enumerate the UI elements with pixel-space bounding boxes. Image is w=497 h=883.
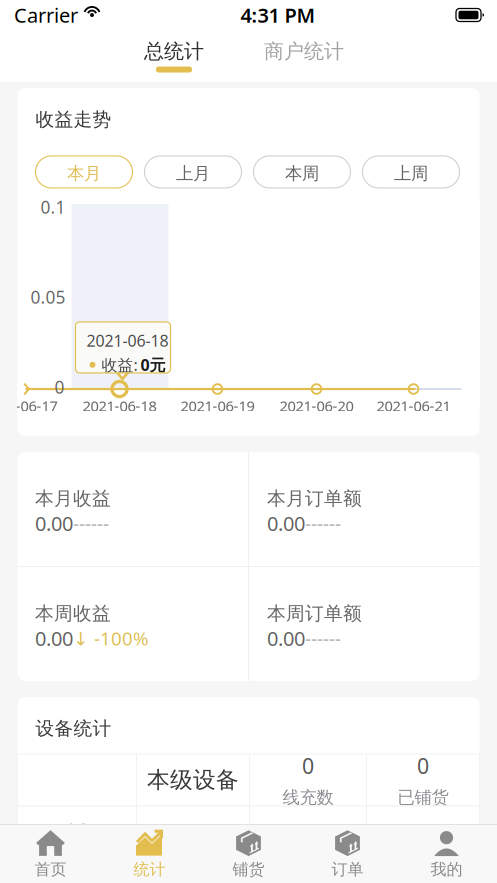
staticText: 0.00 bbox=[267, 625, 305, 651]
staticText: 收益走势 bbox=[35, 108, 111, 131]
staticText: 收益: bbox=[101, 354, 137, 375]
staticText: 0 bbox=[54, 375, 64, 398]
button[interactable]: 本周 bbox=[253, 156, 350, 188]
staticText: 2021-06-17 bbox=[0, 396, 57, 416]
staticText: 线充数 bbox=[282, 787, 333, 808]
staticText: 10 bbox=[64, 817, 90, 847]
staticText: 本月收益 bbox=[35, 487, 111, 510]
button[interactable]: 我的 bbox=[397, 825, 496, 883]
button[interactable]: 商户统计 bbox=[239, 30, 369, 82]
staticText: 设备统计 bbox=[35, 717, 111, 740]
staticText: 商户统计 bbox=[264, 39, 344, 64]
staticText: 0元 bbox=[140, 354, 165, 375]
button[interactable]: 订单 bbox=[298, 825, 397, 883]
staticText: 0.00 bbox=[35, 510, 73, 536]
staticText: 本周收益 bbox=[35, 602, 111, 625]
staticText: 本周 bbox=[285, 163, 319, 184]
button[interactable]: 本月 bbox=[35, 156, 132, 188]
staticText: 我的 bbox=[430, 860, 462, 879]
staticText: 已铺货 bbox=[397, 787, 448, 808]
button[interactable]: 统计 bbox=[100, 825, 199, 883]
staticText: ------ bbox=[305, 626, 341, 651]
staticText: 2021-06-18 bbox=[82, 396, 156, 416]
staticText: ------ bbox=[305, 511, 341, 536]
staticText: 上月 bbox=[176, 163, 210, 184]
staticText: 2021-06-21 bbox=[376, 396, 450, 416]
staticText: 上周 bbox=[394, 163, 428, 184]
staticText: Carrier bbox=[14, 2, 78, 28]
staticText: 铺货 bbox=[232, 860, 264, 879]
staticText: 本级设备 bbox=[147, 766, 239, 794]
staticText: 0 bbox=[302, 752, 314, 780]
staticText: 0 bbox=[417, 752, 429, 780]
staticText: 本月 bbox=[67, 163, 101, 184]
staticText: 4:31 PM bbox=[240, 2, 315, 28]
button[interactable]: 首页 bbox=[1, 825, 100, 883]
staticText: 本周订单额 bbox=[267, 602, 362, 625]
button[interactable]: 上周 bbox=[362, 156, 459, 188]
staticText: ------ bbox=[73, 511, 109, 536]
button[interactable]: 总统计 bbox=[109, 30, 239, 82]
staticText: 2021-06-18 bbox=[86, 330, 168, 351]
staticText: 0.00 bbox=[267, 510, 305, 536]
staticText: 总统计 bbox=[144, 39, 204, 64]
staticText: 2021-06-19 bbox=[180, 396, 254, 416]
staticText: 统计 bbox=[133, 860, 165, 879]
button[interactable]: 上月 bbox=[144, 156, 241, 188]
staticText: 2021-06-20 bbox=[279, 396, 353, 416]
staticText: 0.1 bbox=[40, 195, 65, 218]
staticText: 首页 bbox=[34, 860, 66, 879]
staticText: 0.05 bbox=[30, 285, 65, 308]
staticText: 本月订单额 bbox=[267, 487, 362, 510]
staticText: ↓ -100% bbox=[73, 626, 149, 651]
staticText: 订单 bbox=[331, 860, 363, 879]
button[interactable]: 铺货 bbox=[199, 825, 298, 883]
staticText: 0.00 bbox=[35, 625, 73, 651]
